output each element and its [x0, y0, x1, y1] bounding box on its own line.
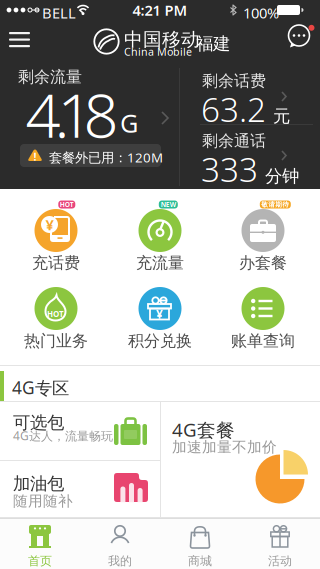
button[interactable]: ¥ [20, 189, 92, 277]
button[interactable]: Messages [280, 20, 320, 60]
button[interactable]: ¥ [124, 267, 196, 355]
staticText: 63.2 [201, 87, 266, 131]
staticText: 充话费 [32, 253, 80, 273]
staticText: 可选包 [13, 412, 64, 433]
staticText: 充流量 [136, 253, 184, 273]
staticText: ¥ [45, 215, 53, 234]
staticText: 办套餐 [239, 253, 287, 273]
staticText: 4:21 PM [132, 0, 187, 20]
staticText: 4 [25, 73, 60, 155]
staticText: 套餐外已用：120M [49, 148, 163, 166]
button[interactable]: 首页 [0, 518, 80, 569]
staticText: 剩余流量 [18, 67, 82, 87]
staticText: 活动 [268, 554, 292, 568]
staticText: 1 [57, 73, 92, 155]
staticText: 4G专区 [12, 376, 69, 399]
button[interactable]: 活动 [240, 518, 320, 569]
staticText: 积分兑换 [128, 331, 192, 351]
staticText: 热门业务 [24, 331, 88, 351]
staticText: 中国移动 [124, 28, 200, 51]
button[interactable]: 剩余通话 [180, 125, 320, 189]
button[interactable]: 剩余流量 [0, 60, 179, 189]
button[interactable]: 可选包 [0, 402, 160, 460]
staticText: 敬请期待 [261, 200, 289, 209]
staticText: 分钟 [265, 166, 299, 187]
staticText: 账单查询 [231, 331, 295, 351]
button[interactable]: 敬请期待 [227, 189, 299, 277]
button[interactable]: 账单查询 [227, 267, 299, 355]
button[interactable]: 我的 [80, 518, 160, 569]
staticText: 剩余通话 [202, 131, 266, 151]
button[interactable]: NEW [124, 189, 196, 277]
button[interactable]: 加油包 [0, 460, 160, 518]
staticText: HOT [60, 200, 74, 209]
staticText: 加油包 [13, 473, 64, 494]
staticText: HOT [47, 309, 64, 319]
button[interactable]: HOT [20, 267, 92, 355]
staticText: 首页 [28, 554, 52, 568]
button[interactable]: Menu [0, 20, 40, 60]
staticText: 元 [273, 106, 290, 127]
staticText: 福建 [196, 33, 230, 54]
staticText: . [54, 73, 69, 155]
button[interactable]: 4G套餐 [160, 402, 320, 518]
staticText: G [120, 106, 138, 140]
staticText: 100% [243, 3, 279, 22]
staticText: NEW [161, 200, 176, 209]
staticText: 剩余话费 [202, 71, 266, 91]
staticText: China Mobile [124, 44, 192, 59]
staticText: ¥ [156, 306, 163, 322]
staticText: 随用随补 [13, 492, 73, 510]
staticText: 4G套餐 [172, 417, 235, 442]
staticText: 333 [201, 147, 258, 191]
button[interactable]: 剩余话费 [180, 60, 320, 124]
staticText: BELL [42, 3, 76, 22]
staticText: 4G达人，流量畅玩 [13, 427, 113, 443]
button[interactable]: 商城 [160, 518, 240, 569]
staticText: 8 [83, 73, 118, 155]
staticText: 我的 [108, 554, 132, 568]
staticText: ! [33, 149, 36, 164]
staticText: 商城 [188, 554, 212, 568]
staticText: 加速加量不加价 [172, 438, 277, 456]
